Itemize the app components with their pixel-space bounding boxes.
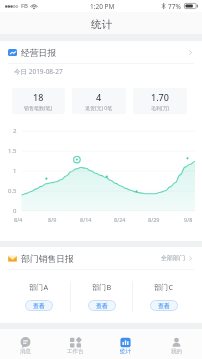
button[interactable]: 1.70 <box>133 88 187 114</box>
staticText: 18 <box>33 91 44 103</box>
button[interactable]: 18 <box>12 88 65 114</box>
button[interactable]: 工作台 <box>50 329 100 359</box>
staticText: 8/29 <box>148 216 160 223</box>
staticText: 部门C <box>154 282 174 292</box>
staticText: 退货(元) 0笔 <box>85 105 113 112</box>
button[interactable]: 我的 <box>151 329 202 359</box>
button[interactable]: 4 <box>72 88 126 114</box>
staticText: 1.5 <box>8 147 17 155</box>
button[interactable]: 查看 <box>150 300 178 311</box>
staticText: 部门销售日报 <box>21 254 74 265</box>
button[interactable]: 统计 <box>100 329 151 359</box>
staticText: 消息 <box>20 348 31 355</box>
staticText: 今日 2019-08-27 <box>14 67 63 76</box>
staticText: 工作台 <box>67 348 84 355</box>
button[interactable]: 全部部门 <box>161 254 194 262</box>
button[interactable]: 部门B <box>71 270 132 323</box>
staticText: 部门A <box>29 282 49 292</box>
staticText: 77% <box>168 2 181 11</box>
button[interactable]: 部门销售日报 <box>0 247 202 269</box>
button[interactable]: 消息 <box>0 329 50 359</box>
staticText: 8/4 <box>14 216 23 223</box>
staticText: 2 <box>13 127 17 135</box>
button[interactable]: 部门C <box>133 270 194 323</box>
staticText: 8/14 <box>80 216 92 223</box>
staticText: 经营日报 <box>21 48 57 59</box>
staticText: 8/24 <box>114 216 126 223</box>
staticText: 0 <box>13 207 17 215</box>
staticText: 查看 <box>96 302 108 310</box>
staticText: 全部部门 <box>161 254 185 262</box>
staticText: FB <box>21 2 29 10</box>
staticText: 0.5 <box>8 187 17 195</box>
staticText: 统计 <box>120 348 131 355</box>
staticText: 9/8 <box>184 216 193 223</box>
staticText: 销售笔数(笔) <box>24 105 53 112</box>
staticText: 1.70 <box>151 91 169 103</box>
staticText: 8/9 <box>48 216 57 223</box>
staticText: 毛利(万) <box>151 105 170 112</box>
staticText: 4 <box>96 91 102 103</box>
button[interactable]: 经营日报 <box>0 41 202 63</box>
staticText: 统计 <box>91 18 112 31</box>
button[interactable]: 部门A <box>8 270 70 323</box>
staticText: 查看 <box>33 302 45 310</box>
staticText: 我的 <box>171 348 182 355</box>
staticText: 1:20 PM <box>90 2 115 11</box>
staticText: 部门B <box>92 282 112 292</box>
staticText: 查看 <box>158 302 170 310</box>
button[interactable]: 查看 <box>88 300 116 311</box>
button[interactable]: 查看 <box>25 300 53 311</box>
staticText: 1 <box>13 167 17 175</box>
